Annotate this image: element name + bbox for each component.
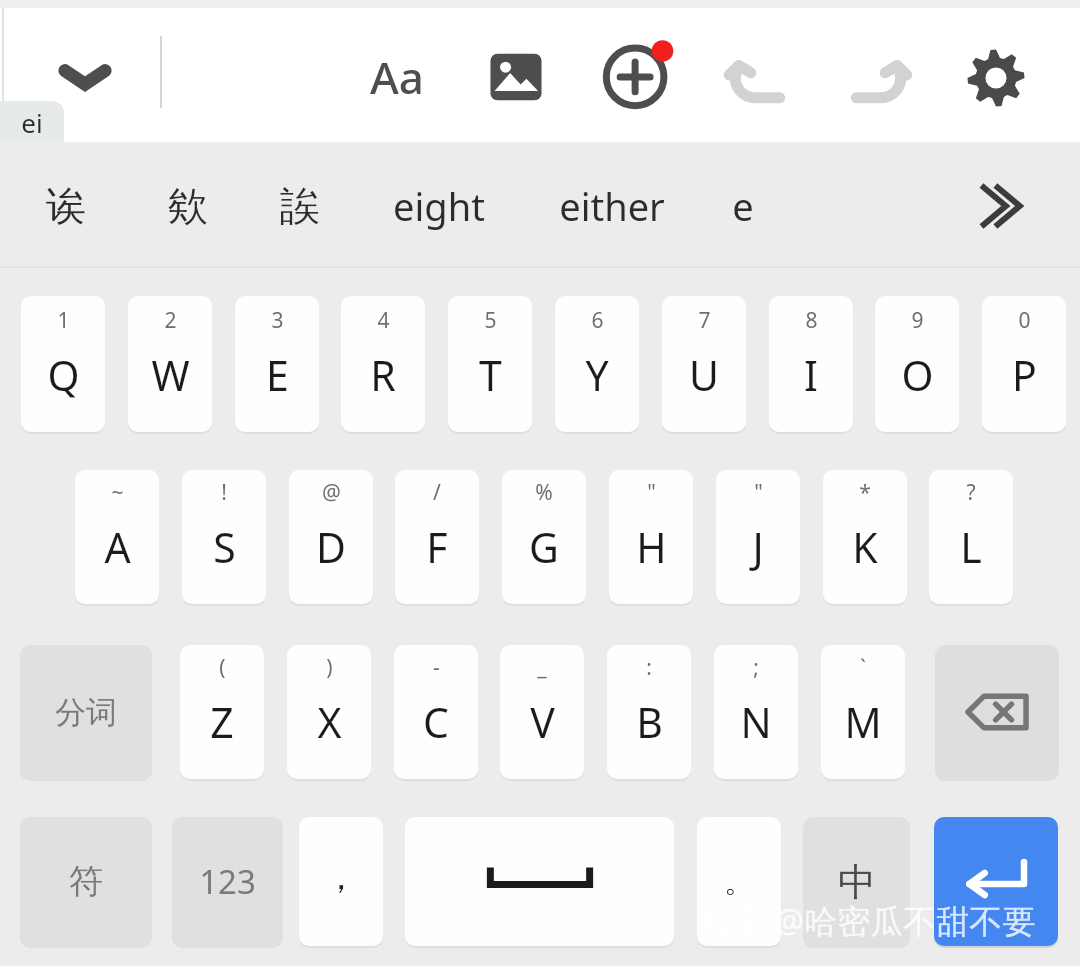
button[interactable]: % — [502, 470, 586, 604]
staticText: ; — [753, 653, 759, 682]
button[interactable]: ~ — [75, 470, 159, 604]
button[interactable]: 7 — [662, 296, 746, 432]
button[interactable]: 9 — [875, 296, 959, 432]
button[interactable]: _ — [500, 645, 584, 779]
button[interactable]: 誒 — [252, 152, 348, 260]
button[interactable]: ， — [299, 817, 383, 946]
staticText: 7 — [698, 306, 711, 335]
button[interactable]: Enter — [934, 817, 1058, 946]
staticText: ~ — [111, 478, 124, 507]
button[interactable]: 1 — [21, 296, 105, 432]
button[interactable]: 8 — [769, 296, 853, 432]
button[interactable]: * — [823, 470, 907, 604]
button[interactable]: ` — [821, 645, 905, 779]
button[interactable]: ei — [0, 101, 64, 143]
staticText: E — [266, 347, 289, 403]
button[interactable]: Backspace — [935, 645, 1059, 779]
staticText: ! — [221, 478, 227, 507]
button[interactable]: 中 — [803, 817, 910, 946]
button[interactable]: Hide keyboard — [48, 42, 122, 112]
staticText: Z — [210, 694, 234, 750]
staticText: 誒 — [280, 181, 320, 231]
staticText: 0 — [1018, 306, 1031, 335]
staticText: A — [104, 519, 131, 575]
button[interactable]: ) — [287, 645, 371, 779]
staticText: Y — [585, 347, 609, 403]
button[interactable]: ; — [714, 645, 798, 779]
staticText: 1 — [57, 306, 70, 335]
button[interactable]: 欸 — [140, 152, 236, 260]
button[interactable]: Undo — [718, 40, 798, 116]
button[interactable]: ( — [180, 645, 264, 779]
button[interactable]: 3 — [235, 296, 319, 432]
staticText: 欸 — [168, 181, 208, 231]
button[interactable]: 分词 — [20, 645, 152, 779]
staticText: ) — [326, 653, 333, 682]
staticText: 6 — [591, 306, 604, 335]
button[interactable]: 0 — [982, 296, 1066, 432]
button[interactable]: 诶 — [18, 152, 114, 260]
button[interactable]: either — [534, 152, 690, 260]
button[interactable]: Redo — [838, 40, 918, 116]
button[interactable]: Add — [596, 32, 680, 116]
button[interactable]: " — [609, 470, 693, 604]
staticText: Aa — [370, 47, 424, 107]
staticText: H — [636, 519, 667, 575]
staticText: 5 — [484, 306, 497, 335]
staticText: 诶 — [46, 181, 86, 231]
staticText: Q — [47, 347, 80, 403]
button[interactable]: " — [716, 470, 800, 604]
button[interactable]: 123 — [172, 817, 283, 946]
staticText: 3 — [271, 306, 284, 335]
button[interactable]: e — [708, 152, 778, 260]
button[interactable]: ? — [929, 470, 1013, 604]
staticText: V — [530, 694, 555, 750]
button[interactable]: : — [607, 645, 691, 779]
staticText: ei — [21, 105, 43, 140]
staticText: 符 — [69, 860, 103, 903]
button[interactable]: 符 — [20, 817, 152, 946]
button[interactable]: Aa — [352, 38, 442, 116]
staticText: * — [859, 478, 871, 507]
button[interactable]: / — [395, 470, 479, 604]
staticText: ， — [324, 856, 358, 899]
staticText: 4 — [377, 306, 390, 335]
button[interactable]: - — [394, 645, 478, 779]
button[interactable]: More candidates — [955, 160, 1045, 252]
staticText: % — [535, 478, 553, 507]
button[interactable]: 2 — [128, 296, 212, 432]
button[interactable]: 4 — [341, 296, 425, 432]
staticText: 。 — [724, 863, 754, 901]
staticText: L — [960, 519, 982, 575]
staticText: 123 — [199, 859, 256, 904]
staticText: I — [804, 347, 818, 403]
staticText: X — [317, 694, 342, 750]
staticText: N — [740, 694, 772, 750]
staticText: 8 — [805, 306, 818, 335]
button[interactable]: ! — [182, 470, 266, 604]
staticText: eight — [393, 180, 485, 232]
staticText: U — [689, 347, 719, 403]
button[interactable]: 6 — [555, 296, 639, 432]
button[interactable]: Settings — [954, 36, 1038, 120]
staticText: B — [636, 694, 663, 750]
button[interactable]: eight — [366, 152, 512, 260]
button[interactable]: Insert image — [476, 38, 556, 116]
staticText: P — [1012, 347, 1037, 403]
staticText: D — [316, 519, 346, 575]
button[interactable]: 5 — [448, 296, 532, 432]
staticText: O — [901, 347, 934, 403]
staticText: T — [479, 347, 502, 403]
staticText: K — [852, 519, 878, 575]
button[interactable]: @ — [289, 470, 373, 604]
staticText: 中 — [838, 858, 876, 906]
button[interactable]: 。 — [697, 817, 781, 946]
staticText: 知乎 @哈密瓜不甜不要钱 — [700, 898, 1068, 950]
staticText: W — [151, 347, 190, 403]
staticText: J — [752, 519, 764, 575]
button[interactable]: Space — [405, 817, 674, 946]
staticText: M — [844, 694, 882, 750]
staticText: 2 — [164, 306, 177, 335]
staticText: ` — [860, 653, 866, 682]
staticText: @ — [322, 478, 341, 507]
